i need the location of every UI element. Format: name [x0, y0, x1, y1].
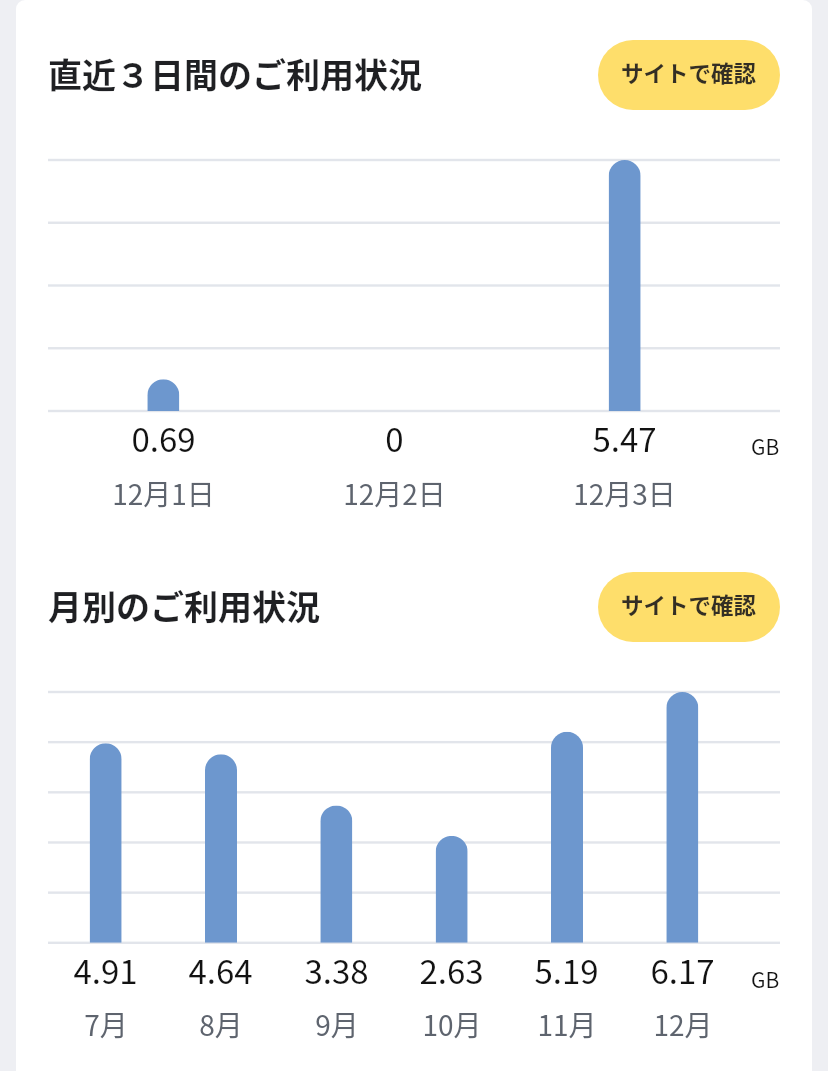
staticText: 10月	[422, 1004, 482, 1045]
staticText: 12月1日	[112, 473, 215, 514]
staticText: GB	[751, 431, 780, 461]
staticText: 月別のご利用状況	[48, 581, 320, 630]
button[interactable]: サイトで確認	[598, 40, 780, 110]
staticText: サイトで確認	[621, 588, 757, 621]
staticText: 8月	[199, 1004, 243, 1045]
staticText: 12月	[653, 1004, 713, 1045]
other: Unit gigabytes	[745, 431, 785, 461]
staticText: 0.69	[131, 414, 196, 462]
staticText: 11月	[537, 1004, 597, 1045]
button[interactable]: サイトで確認	[598, 572, 780, 642]
staticText: 2.63	[419, 946, 484, 994]
staticText: 12月2日	[343, 473, 446, 514]
staticText: 9月	[315, 1004, 359, 1045]
other: Unit gigabytes	[745, 964, 785, 994]
staticText: 4.64	[188, 946, 253, 994]
staticText: 3.38	[304, 946, 369, 994]
staticText: 12月3日	[573, 473, 676, 514]
staticText: 5.19	[534, 946, 599, 994]
staticText: 直近３日間のご利用状況	[48, 49, 422, 98]
staticText: 4.91	[73, 946, 138, 994]
staticText: サイトで確認	[621, 56, 757, 89]
staticText: 0	[385, 414, 404, 462]
staticText: 6.17	[650, 946, 715, 994]
staticText: 7月	[84, 1004, 128, 1045]
staticText: GB	[751, 964, 780, 994]
staticText: 5.47	[592, 414, 657, 462]
